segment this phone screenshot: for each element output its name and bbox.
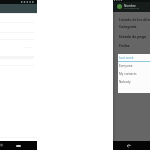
button[interactable]: Last week	[118, 54, 150, 62]
button[interactable]: Back	[125, 141, 135, 150]
staticText: correo@gmail	[124, 7, 140, 10]
button[interactable]	[118, 62, 150, 70]
button[interactable]: Back	[0, 141, 8, 150]
button[interactable]: Home	[14, 141, 23, 150]
staticText: Listado de los últimos movimientos	[119, 17, 150, 22]
staticText: Nombre	[124, 4, 136, 8]
staticText: Categoría	[119, 24, 137, 29]
button[interactable]	[118, 70, 150, 78]
button[interactable]	[118, 78, 150, 86]
button[interactable]: Account	[117, 4, 122, 9]
staticText: Estado de pago	[119, 34, 147, 39]
staticText: Last week	[119, 56, 134, 60]
staticText: Nobody	[119, 80, 131, 84]
staticText: My contacts	[119, 72, 137, 76]
staticText: Fecha	[119, 43, 130, 48]
staticText: Everyone	[119, 64, 133, 68]
